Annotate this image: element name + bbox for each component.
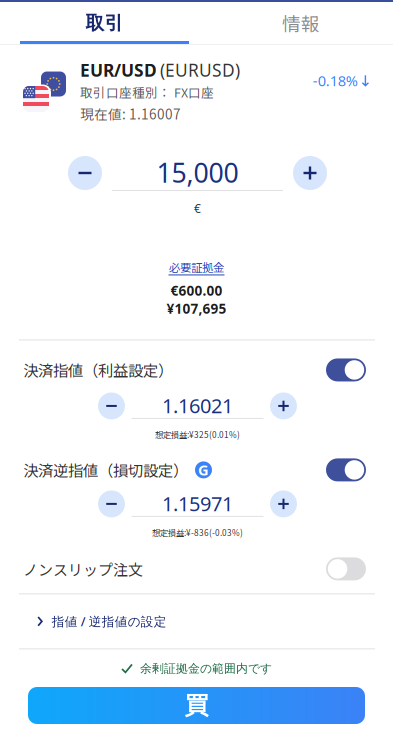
staticText: 1.16021 [162, 392, 233, 419]
button[interactable]: 情報 [209, 2, 393, 44]
button[interactable]: 必要証拠金 [168, 260, 224, 275]
button[interactable]: Increase [270, 392, 297, 419]
button[interactable]: Off [326, 557, 366, 580]
staticText: 必要証拠金 [169, 259, 224, 275]
button[interactable]: Decrease [98, 392, 125, 419]
staticText: 想定損益:¥325(0.01%) [155, 428, 240, 440]
staticText: ¥107,695 [166, 299, 226, 318]
staticText: 買 [184, 690, 208, 721]
staticText: 決済逆指値（損切設定） [23, 459, 188, 481]
staticText: 取引口座種別： FX口座 [80, 83, 214, 101]
staticText: 15,000 [156, 155, 238, 190]
staticText: EUR/USD [80, 58, 157, 81]
staticText: 想定損益:¥-836(-0.03%) [152, 526, 243, 538]
staticText: 余剰証拠金の範囲内です [140, 661, 272, 676]
staticText: 取引 [85, 11, 123, 35]
staticText: € [194, 200, 201, 216]
button[interactable]: Decrease [98, 490, 125, 517]
staticText: -0.18% [313, 71, 358, 90]
staticText: 指値 / 逆指値の設定 [52, 613, 167, 630]
button[interactable]: 取引 [0, 2, 209, 44]
staticText: G [198, 460, 209, 480]
staticText: 現在値: 1.16007 [80, 104, 181, 123]
button[interactable]: Increase [293, 156, 327, 190]
button[interactable]: 指値 / 逆指値の設定 [0, 594, 393, 648]
staticText: 決済指値（利益設定） [23, 359, 173, 381]
button[interactable]: Decrease [68, 156, 102, 190]
staticText: (EURUSD) [160, 58, 240, 81]
staticText: ノンスリップ注文 [23, 558, 143, 580]
button[interactable]: Increase [270, 490, 297, 517]
staticText: 1.15971 [162, 490, 233, 517]
staticText: €600.00 [170, 281, 222, 300]
button[interactable]: On [326, 358, 366, 381]
button[interactable]: On [326, 458, 366, 481]
button[interactable]: 買 [28, 687, 365, 724]
staticText: 情報 [282, 9, 320, 36]
